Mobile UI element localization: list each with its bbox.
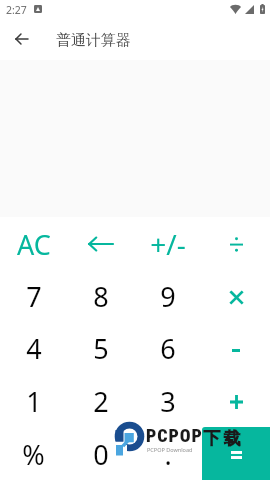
staticText: 5	[93, 330, 109, 367]
button[interactable]: Equals	[202, 427, 270, 480]
button[interactable]: DIVIDE	[202, 218, 270, 270]
button[interactable]: 8	[67, 270, 134, 322]
button[interactable]: Back	[7, 25, 35, 53]
button[interactable]: 7	[0, 270, 67, 322]
staticText: %	[22, 436, 45, 473]
button[interactable]: 0	[67, 428, 134, 480]
button[interactable]: .	[134, 428, 202, 480]
button[interactable]: 9	[134, 270, 202, 322]
button[interactable]: %	[0, 428, 67, 480]
staticText: 1	[26, 383, 42, 420]
staticText: 0	[93, 436, 109, 473]
staticText: 6	[160, 330, 176, 367]
staticText: 9	[160, 278, 176, 315]
button[interactable]: 5	[67, 322, 134, 375]
staticText: 下载	[202, 428, 242, 449]
button[interactable]: 4	[0, 322, 67, 375]
button[interactable]: PLUS	[202, 375, 270, 428]
button[interactable]: MINUS	[202, 322, 270, 375]
staticText: 4	[26, 330, 42, 367]
button[interactable]: 2	[67, 375, 134, 428]
button[interactable]: 1	[0, 375, 67, 428]
staticText: 7	[26, 278, 42, 315]
staticText: +/-	[150, 225, 186, 263]
staticText: .	[164, 436, 172, 473]
button[interactable]: +/-	[134, 218, 202, 270]
staticText: 8	[93, 278, 109, 315]
staticText: PCPOP Download	[147, 446, 193, 453]
staticText: 2	[93, 383, 109, 420]
button[interactable]: AC	[0, 218, 67, 270]
button[interactable]: 3	[134, 375, 202, 428]
staticText: 普通计算器	[56, 31, 131, 50]
staticText: AC	[17, 226, 51, 263]
button[interactable]: BACKSPACE	[67, 218, 134, 270]
staticText: 3	[160, 383, 176, 420]
button[interactable]: TIMES	[202, 270, 270, 322]
button[interactable]: 6	[134, 322, 202, 375]
staticText: PCPOP	[146, 425, 203, 446]
staticText: 2:27	[6, 3, 27, 17]
